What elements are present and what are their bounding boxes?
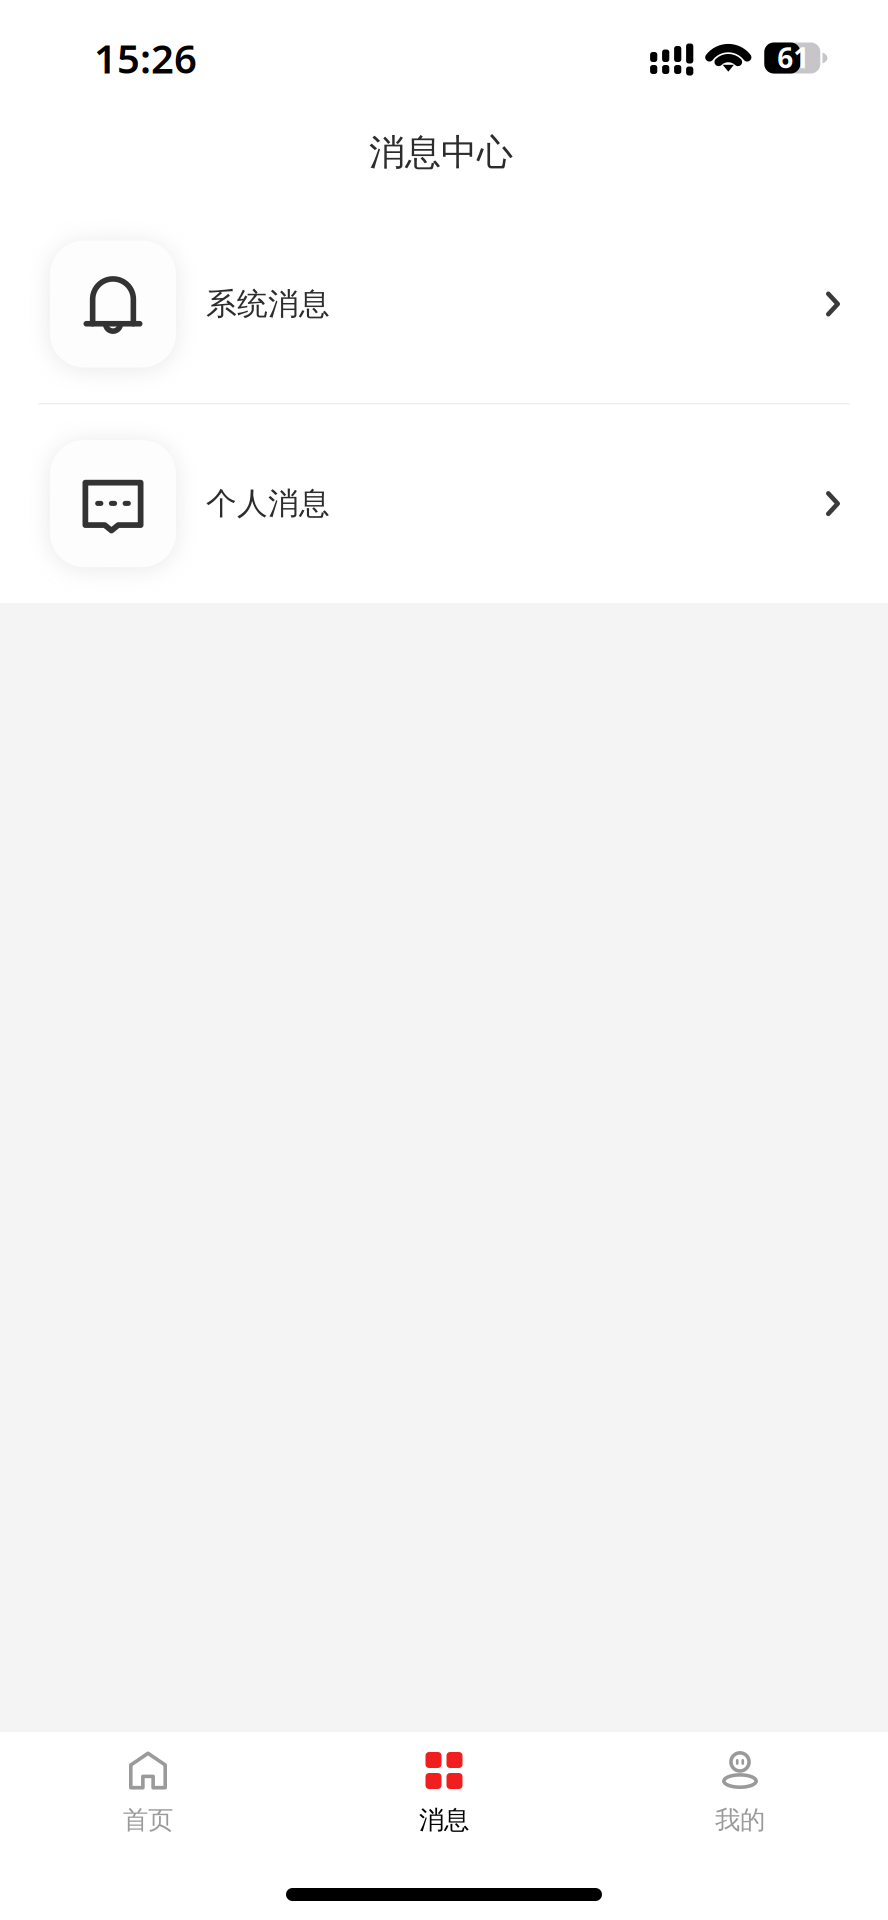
button[interactable]: 消息 <box>296 1752 592 1836</box>
button[interactable]: 系统消息 <box>0 205 888 403</box>
button[interactable]: 个人消息 <box>0 405 888 603</box>
staticText: 15:26 <box>94 31 197 85</box>
staticText: 我的 <box>715 1804 765 1836</box>
staticText: 系统消息 <box>206 285 330 323</box>
staticText: 消息 <box>419 1804 469 1836</box>
button[interactable]: 首页 <box>0 1752 296 1836</box>
staticText: 首页 <box>123 1804 173 1836</box>
button[interactable]: 我的 <box>592 1752 888 1836</box>
staticText: 61 <box>777 38 809 76</box>
staticText: 个人消息 <box>206 484 330 523</box>
staticText: 消息中心 <box>369 130 513 175</box>
